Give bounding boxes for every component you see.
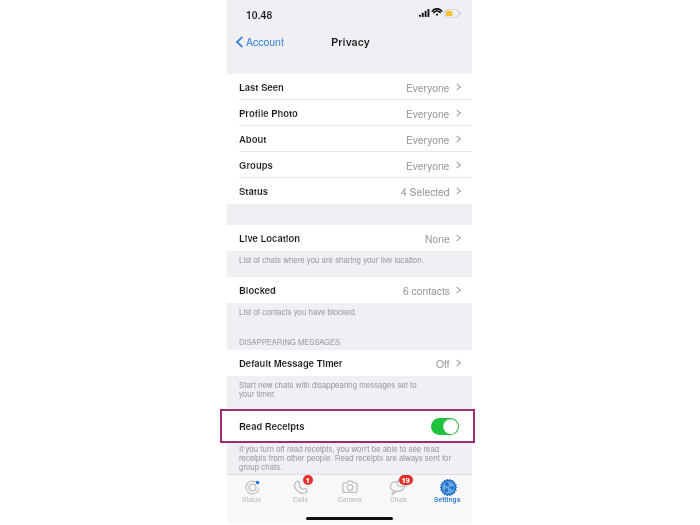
button[interactable]: Account: [236, 34, 284, 49]
staticText: Start new chats with disappearing messag…: [239, 379, 417, 390]
button[interactable]: Profile Photo: [227, 100, 472, 126]
staticText: List of chats where you are sharing your…: [239, 254, 424, 265]
staticText: Status: [239, 184, 269, 198]
staticText: your timer.: [239, 388, 276, 399]
staticText: group chats.: [239, 461, 283, 472]
button[interactable]: Settings: [423, 475, 472, 524]
button[interactable]: Blocked: [227, 277, 472, 303]
staticText: 10.48: [246, 7, 273, 22]
other: Camera: [342, 479, 358, 495]
staticText: About: [239, 132, 267, 146]
staticText: Calls: [293, 494, 308, 504]
staticText: None: [425, 231, 450, 246]
button[interactable]: About: [227, 126, 472, 152]
other: Settings: [441, 480, 456, 495]
button[interactable]: Camera: [325, 475, 374, 524]
other: Calls: [293, 479, 309, 495]
button[interactable]: Read receipts toggle: [431, 418, 459, 435]
staticText: 6 contacts: [403, 283, 450, 298]
staticText: 1: [306, 475, 310, 485]
staticText: Status: [242, 494, 261, 504]
staticText: Groups: [239, 158, 273, 172]
staticText: Last Seen: [239, 80, 284, 94]
other: Chats: [390, 479, 408, 495]
staticText: Everyone: [406, 106, 450, 121]
staticText: Privacy: [331, 34, 370, 50]
staticText: 19: [402, 475, 410, 485]
staticText: Account: [246, 34, 284, 49]
button[interactable]: Status: [227, 178, 472, 204]
staticText: Read Receipts: [239, 419, 305, 433]
button[interactable]: Status: [227, 475, 276, 524]
staticText: List of contacts you have blocked.: [239, 306, 357, 317]
staticText: Everyone: [406, 80, 450, 95]
staticText: Camera: [338, 494, 362, 504]
staticText: Everyone: [406, 132, 450, 147]
button[interactable]: Chats: [374, 475, 423, 524]
staticText: receipts from other people. Read receipt…: [239, 452, 452, 463]
staticText: Off: [436, 356, 450, 371]
button[interactable]: Default Message Timer: [227, 350, 472, 376]
button[interactable]: Last Seen: [227, 74, 472, 100]
button[interactable]: Live Location: [227, 225, 472, 251]
button[interactable]: Groups: [227, 152, 472, 178]
staticText: Chats: [390, 494, 408, 504]
staticText: If you turn off read receipts, you won't…: [239, 443, 440, 454]
button[interactable]: Calls: [276, 475, 325, 524]
staticText: Default Message Timer: [239, 356, 343, 370]
staticText: 4 Selected: [401, 184, 450, 199]
staticText: Live Location: [239, 231, 301, 245]
staticText: Blocked: [239, 283, 276, 297]
button[interactable]: Read Receipts: [227, 409, 472, 443]
staticText: Everyone: [406, 158, 450, 173]
staticText: Settings: [434, 494, 461, 504]
staticText: DISAPPEARING MESSAGES: [239, 336, 341, 347]
staticText: Profile Photo: [239, 106, 298, 120]
other: Status: [245, 480, 260, 495]
